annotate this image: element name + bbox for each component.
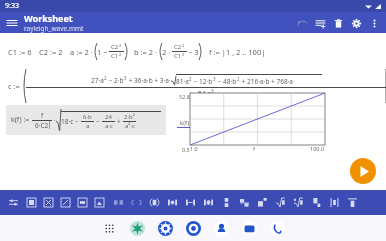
button[interactable]: Run bbox=[350, 158, 376, 184]
button[interactable]: Square root bbox=[273, 190, 288, 215]
button[interactable]: Phone bbox=[267, 218, 287, 238]
button[interactable]: Subscript bbox=[309, 190, 324, 215]
staticText: 2 bbox=[189, 76, 192, 82]
staticText: 2 bbox=[237, 76, 240, 82]
button[interactable]: Matrix 0 bbox=[24, 190, 39, 215]
staticText: 2 bbox=[119, 52, 122, 57]
button[interactable]: Fraction bbox=[237, 190, 252, 215]
button[interactable]: Settings bbox=[155, 218, 175, 238]
button[interactable]: Matrix 1 bbox=[41, 190, 56, 215]
staticText: 27·a bbox=[91, 76, 104, 85]
button[interactable]: Power bbox=[255, 190, 270, 215]
button[interactable]: More options bbox=[365, 14, 383, 32]
staticText: + 216·a·b + 768·a bbox=[240, 77, 294, 86]
staticText: C1 bbox=[111, 52, 119, 60]
staticText: + 36·a·b + 3·a· bbox=[127, 76, 171, 85]
staticText: 18·c − bbox=[61, 117, 79, 126]
button[interactable]: Files bbox=[239, 218, 259, 238]
staticText: k(f) := bbox=[11, 115, 30, 125]
staticText: c := bbox=[8, 81, 20, 91]
staticText: 2 bbox=[182, 52, 185, 57]
staticText: 0.5 bbox=[182, 146, 190, 153]
staticText: C1 := 6 bbox=[8, 47, 32, 57]
button[interactable]: Menu bbox=[2, 13, 22, 33]
staticText: 81·a bbox=[176, 77, 189, 86]
staticText: b := 2 · bbox=[134, 47, 158, 57]
staticText: − 3 bbox=[188, 47, 199, 57]
button[interactable]: Stack bbox=[219, 190, 234, 215]
button[interactable]: Tool 0 bbox=[6, 190, 21, 215]
staticText: C1 bbox=[174, 52, 182, 60]
staticText: 24 bbox=[105, 113, 112, 121]
staticText: 1.0 bbox=[190, 145, 198, 152]
staticText: − 2·b bbox=[107, 76, 124, 85]
staticText: a bbox=[86, 122, 90, 130]
staticText: 2 bbox=[182, 43, 185, 48]
staticText: C2 := 2 bbox=[39, 47, 63, 57]
button[interactable]: Contacts bbox=[211, 218, 231, 238]
staticText: · bbox=[52, 116, 56, 125]
staticText: 52.8 bbox=[179, 93, 190, 100]
staticText: 3 bbox=[124, 75, 127, 81]
staticText: − 12·b bbox=[192, 77, 213, 86]
staticText: 1 − bbox=[97, 47, 108, 57]
button[interactable]: Camera bbox=[183, 218, 203, 238]
button[interactable]: Dim tool 2 bbox=[129, 190, 144, 215]
button[interactable]: Bracket 3 bbox=[201, 190, 216, 215]
staticText: 6·C2 bbox=[35, 121, 49, 130]
staticText: a²·c bbox=[125, 122, 135, 130]
staticText: Worksheet bbox=[24, 12, 73, 24]
button[interactable]: Add line bbox=[311, 14, 329, 32]
button[interactable]: Nth root bbox=[291, 190, 306, 215]
staticText: a·c bbox=[105, 122, 113, 130]
staticText: f bbox=[41, 111, 44, 120]
staticText: a := 2 · bbox=[70, 47, 93, 57]
button[interactable]: Delete bbox=[329, 14, 347, 32]
staticText: 3 bbox=[213, 76, 216, 82]
staticText: 2 bbox=[104, 75, 107, 81]
staticText: f bbox=[253, 145, 256, 153]
staticText: 6·b bbox=[83, 113, 92, 121]
button[interactable]: Settings bbox=[347, 14, 365, 32]
button[interactable]: Bracket 2 bbox=[183, 190, 198, 215]
staticText: 3 bbox=[211, 88, 214, 94]
button[interactable]: Matrix 2 bbox=[58, 190, 73, 215]
staticText: 2 · bbox=[162, 47, 171, 57]
button[interactable]: Undo bbox=[293, 14, 311, 32]
button[interactable]: Matrix 3 bbox=[75, 190, 90, 215]
staticText: + bbox=[117, 117, 121, 126]
staticText: 100.0 bbox=[310, 145, 325, 152]
button[interactable]: Abs bbox=[327, 190, 342, 215]
button[interactable]: Dim tool 1 bbox=[111, 190, 126, 215]
staticText: C2 bbox=[111, 43, 119, 51]
staticText: 2·b² bbox=[124, 113, 135, 121]
staticText: k(f) bbox=[180, 119, 190, 127]
button[interactable]: Photos bbox=[127, 218, 147, 238]
staticText: C2 bbox=[174, 43, 182, 51]
staticText: rayleigh_wave.mmt bbox=[24, 24, 84, 33]
staticText: f := |1 , 2 .. 100| bbox=[209, 47, 266, 57]
staticText: 9:33 bbox=[5, 1, 19, 11]
staticText: 2 bbox=[119, 43, 122, 48]
button[interactable]: All apps bbox=[99, 218, 119, 238]
staticText: − 48·b bbox=[216, 77, 237, 86]
button[interactable]: Bar bbox=[345, 190, 360, 215]
staticText: − bbox=[96, 117, 100, 126]
button[interactable]: Bracket 1 bbox=[165, 190, 180, 215]
staticText: 54·a bbox=[198, 89, 211, 98]
button[interactable]: Bracket 0 bbox=[147, 190, 162, 215]
button[interactable]: Matrix 4 bbox=[92, 190, 107, 215]
